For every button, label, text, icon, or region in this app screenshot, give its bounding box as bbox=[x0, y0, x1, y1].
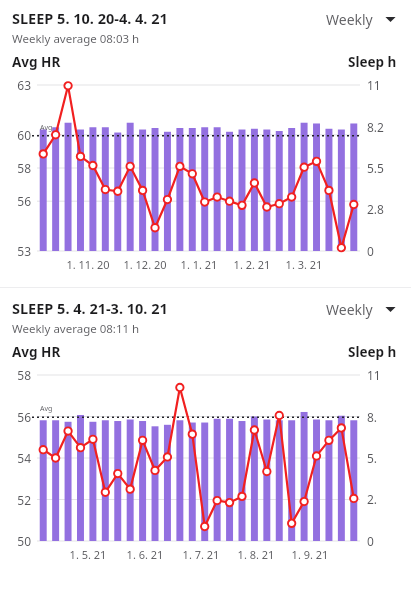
staticText: 1. 8. 21 bbox=[225, 547, 287, 562]
staticText: SLEEP 5. 4. 21-3. 10. 21 bbox=[12, 298, 168, 318]
other: Change period bbox=[384, 13, 397, 26]
staticText: 1. 1. 21 bbox=[168, 257, 230, 272]
staticText: 58 bbox=[0, 367, 31, 383]
staticText: 5. bbox=[367, 450, 378, 466]
staticText: Avg bbox=[40, 123, 53, 133]
staticText: 0 bbox=[367, 533, 374, 549]
staticText: 2. bbox=[367, 491, 378, 507]
staticText: 1. 2. 21 bbox=[221, 257, 283, 272]
staticText: 50 bbox=[0, 533, 31, 549]
staticText: 60 bbox=[0, 127, 31, 143]
staticText: 63 bbox=[0, 77, 31, 93]
staticText: Sleep h bbox=[348, 343, 397, 361]
staticText: 1. 12. 20 bbox=[114, 257, 176, 272]
staticText: 56 bbox=[0, 193, 31, 209]
staticText: 1. 6. 21 bbox=[114, 547, 176, 562]
staticText: 53 bbox=[0, 243, 31, 259]
staticText: 0 bbox=[367, 243, 374, 259]
staticText: 11 bbox=[367, 77, 381, 93]
staticText: 1. 5. 21 bbox=[57, 547, 119, 562]
staticText: Weekly average 08:11 h bbox=[12, 321, 140, 337]
staticText: Sleep h bbox=[348, 53, 397, 71]
staticText: Avg HR bbox=[12, 53, 61, 71]
staticText: 56 bbox=[0, 409, 31, 425]
button[interactable]: Weekly bbox=[326, 300, 397, 319]
staticText: SLEEP 5. 10. 20-4. 4. 21 bbox=[12, 8, 168, 28]
staticText: 1. 7. 21 bbox=[170, 547, 232, 562]
staticText: Weekly bbox=[326, 10, 373, 29]
staticText: 11 bbox=[367, 367, 381, 383]
staticText: Avg bbox=[40, 404, 53, 414]
staticText: 52 bbox=[0, 492, 31, 508]
staticText: 8. bbox=[367, 409, 378, 425]
staticText: 8.2 bbox=[367, 119, 384, 135]
staticText: 1. 11. 20 bbox=[57, 257, 119, 272]
staticText: Avg HR bbox=[12, 343, 61, 361]
other: Change period bbox=[384, 303, 397, 316]
staticText: 1. 3. 21 bbox=[273, 257, 335, 272]
button[interactable]: Weekly bbox=[326, 10, 397, 29]
staticText: 58 bbox=[0, 160, 31, 176]
staticText: 5.5 bbox=[367, 160, 384, 176]
staticText: 2.8 bbox=[367, 201, 384, 217]
staticText: Weekly average 08:03 h bbox=[12, 31, 140, 47]
staticText: 54 bbox=[0, 450, 31, 466]
staticText: 1. 9. 21 bbox=[279, 547, 341, 562]
staticText: Weekly bbox=[326, 300, 373, 319]
